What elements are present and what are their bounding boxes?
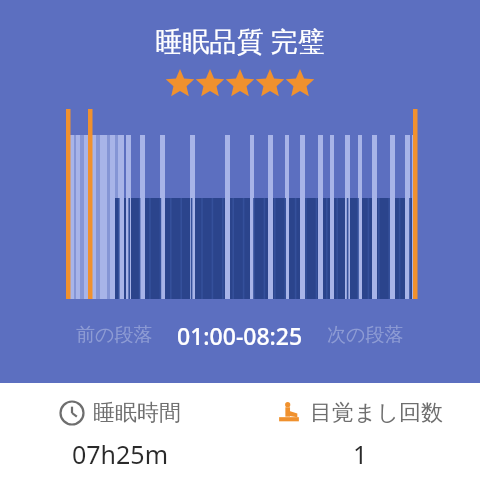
staticText: 睡眠時間 (93, 399, 181, 427)
staticText: 前の段落 (76, 323, 153, 347)
button[interactable] (0, 107, 480, 307)
staticText: 睡眠品質 完璧 (0, 22, 480, 59)
staticText: 07h25m (72, 437, 169, 471)
staticText: 目覚まし回数 (310, 399, 444, 427)
staticText: 01:00-08:25 (177, 320, 303, 351)
button[interactable]: 前の段落 (70, 317, 159, 353)
button[interactable]: Wake up count (240, 383, 480, 480)
staticText: 1 (353, 437, 368, 471)
other: Sleep duration (59, 400, 85, 426)
button[interactable]: Sleep duration (0, 383, 240, 480)
button[interactable]: 次の段落 (321, 317, 410, 353)
staticText: 次の段落 (327, 323, 404, 347)
other: Wake up count (276, 400, 302, 426)
